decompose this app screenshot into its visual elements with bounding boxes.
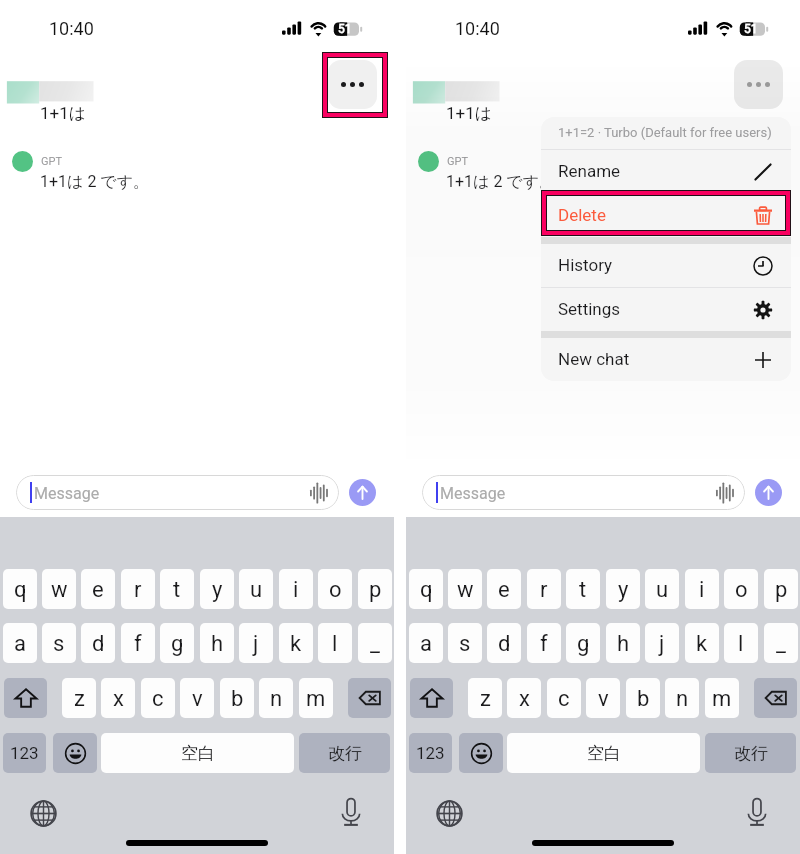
button[interactable]: h: [200, 623, 234, 663]
button[interactable]: m: [299, 678, 333, 718]
button[interactable]: x: [101, 678, 135, 718]
button[interactable]: Send: [755, 479, 782, 506]
button[interactable]: w: [448, 569, 482, 609]
button[interactable]: New chat: [541, 338, 791, 381]
button[interactable]: g: [160, 623, 194, 663]
button[interactable]: y: [606, 569, 640, 609]
button[interactable]: t: [160, 569, 194, 609]
button[interactable]: w: [42, 569, 76, 609]
button[interactable]: n: [259, 678, 293, 718]
button[interactable]: e: [81, 569, 115, 609]
button[interactable]: l: [318, 623, 352, 663]
button[interactable]: Emoji: [53, 733, 97, 773]
button[interactable]: Voice input: [306, 482, 330, 506]
staticText: u: [250, 577, 263, 603]
staticText: _: [776, 631, 786, 657]
button[interactable]: Switch keyboard: [436, 800, 463, 827]
button[interactable]: d: [487, 623, 521, 663]
button[interactable]: v: [586, 678, 620, 718]
button[interactable]: Shift: [4, 678, 47, 718]
button[interactable]: n: [665, 678, 699, 718]
staticText: k: [290, 631, 302, 657]
staticText: p: [775, 577, 788, 603]
staticText: s: [459, 631, 471, 657]
button[interactable]: 空白: [101, 733, 294, 773]
button[interactable]: 123: [3, 733, 46, 773]
button[interactable]: y: [200, 569, 234, 609]
button[interactable]: History: [541, 244, 791, 287]
button[interactable]: r: [121, 569, 155, 609]
button[interactable]: o: [318, 569, 352, 609]
button[interactable]: 空白: [507, 733, 700, 773]
staticText: Message: [440, 484, 506, 503]
button[interactable]: q: [409, 569, 443, 609]
button[interactable]: p: [358, 569, 392, 609]
button[interactable]: j: [239, 623, 273, 663]
button[interactable]: Dictation: [748, 798, 766, 826]
staticText: f: [134, 631, 142, 657]
button[interactable]: 改行: [705, 733, 796, 773]
staticText: r: [134, 577, 142, 603]
button[interactable]: r: [527, 569, 561, 609]
button[interactable]: m: [705, 678, 739, 718]
button[interactable]: s: [42, 623, 76, 663]
staticText: 1+1は 2 です。: [446, 172, 556, 192]
button[interactable]: 改行: [299, 733, 390, 773]
button[interactable]: k: [685, 623, 719, 663]
button[interactable]: p: [764, 569, 798, 609]
staticText: 1+1=2 · Turbo (Default for free users): [558, 125, 772, 140]
button[interactable]: d: [81, 623, 115, 663]
button[interactable]: c: [141, 678, 175, 718]
button[interactable]: o: [724, 569, 758, 609]
button[interactable]: e: [487, 569, 521, 609]
button[interactable]: l: [724, 623, 758, 663]
button[interactable]: a: [3, 623, 37, 663]
button[interactable]: u: [645, 569, 679, 609]
button[interactable]: _: [764, 623, 798, 663]
button[interactable]: Dictation: [342, 798, 360, 826]
button[interactable]: c: [547, 678, 581, 718]
button[interactable]: Switch keyboard: [30, 800, 57, 827]
button[interactable]: g: [566, 623, 600, 663]
button[interactable]: u: [239, 569, 273, 609]
button[interactable]: Backspace: [348, 678, 391, 718]
staticText: n: [676, 686, 689, 712]
button[interactable]: s: [448, 623, 482, 663]
button[interactable]: b: [626, 678, 660, 718]
button[interactable]: Backspace: [754, 678, 797, 718]
button[interactable]: a: [409, 623, 443, 663]
button[interactable]: Send: [349, 479, 376, 506]
button[interactable]: q: [3, 569, 37, 609]
staticText: _: [370, 631, 380, 657]
button[interactable]: _: [358, 623, 392, 663]
button[interactable]: b: [220, 678, 254, 718]
staticText: r: [540, 577, 548, 603]
staticText: Message: [34, 484, 100, 503]
button[interactable]: f: [527, 623, 561, 663]
button[interactable]: Voice input: [712, 482, 736, 506]
button[interactable]: Rename: [541, 150, 791, 193]
button[interactable]: Delete: [541, 194, 791, 237]
button[interactable]: Message: [16, 475, 339, 510]
button[interactable]: Shift: [410, 678, 453, 718]
button[interactable]: Message: [422, 475, 745, 510]
staticText: g: [171, 631, 184, 657]
button[interactable]: f: [121, 623, 155, 663]
button[interactable]: More options: [328, 60, 377, 109]
staticText: 51: [338, 22, 352, 36]
button[interactable]: t: [566, 569, 600, 609]
staticText: g: [577, 631, 590, 657]
button[interactable]: h: [606, 623, 640, 663]
button[interactable]: i: [279, 569, 313, 609]
button[interactable]: v: [180, 678, 214, 718]
button[interactable]: k: [279, 623, 313, 663]
button[interactable]: z: [62, 678, 96, 718]
button[interactable]: j: [645, 623, 679, 663]
button[interactable]: i: [685, 569, 719, 609]
button[interactable]: 123: [409, 733, 452, 773]
button[interactable]: More options: [734, 60, 783, 109]
button[interactable]: z: [468, 678, 502, 718]
button[interactable]: x: [507, 678, 541, 718]
button[interactable]: Settings: [541, 288, 791, 331]
button[interactable]: Emoji: [459, 733, 503, 773]
